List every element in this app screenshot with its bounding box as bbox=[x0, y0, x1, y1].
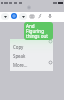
button[interactable]: Keyboard bbox=[29, 13, 35, 19]
button[interactable]: Swap languages bbox=[11, 13, 17, 19]
staticText: Speak bbox=[13, 53, 26, 59]
button[interactable]: More options bbox=[48, 60, 53, 65]
button[interactable]: More... bbox=[10, 60, 53, 69]
button[interactable]: Copy bbox=[10, 42, 53, 51]
button[interactable]: Microphone bbox=[47, 13, 53, 19]
button[interactable]: Copy text bbox=[48, 39, 53, 44]
staticText: Copy bbox=[13, 44, 24, 50]
button[interactable]: Handwriting bbox=[37, 13, 43, 19]
button[interactable]: And Figuring things out bbox=[24, 22, 53, 40]
button[interactable]: Speak bbox=[10, 51, 53, 60]
staticText: And Figuring things out bbox=[26, 23, 53, 39]
button[interactable]: Select language bbox=[19, 13, 27, 20]
staticText: More... bbox=[13, 62, 28, 68]
button[interactable]: Select language bbox=[1, 13, 9, 20]
